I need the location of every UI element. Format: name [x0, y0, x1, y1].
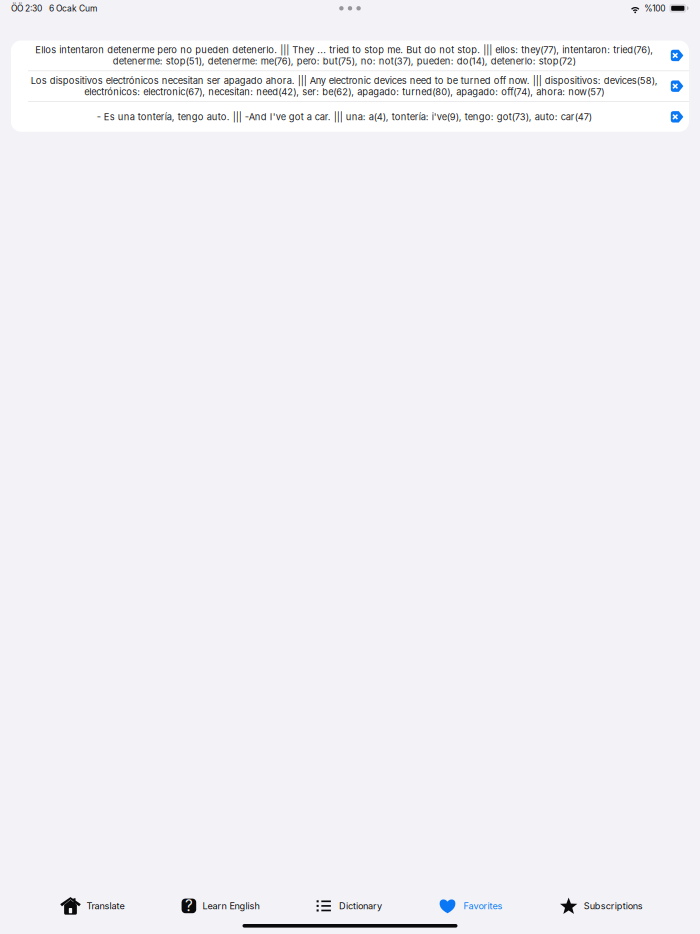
button[interactable]: Los dispositivos electrónicos necesitan …	[11, 71, 689, 101]
button[interactable]: ?	[182, 899, 259, 913]
staticText: Learn English	[202, 900, 259, 911]
button[interactable]: Translate	[60, 897, 124, 915]
staticText: Translate	[86, 900, 124, 911]
button[interactable]: Multitasking controls	[333, 0, 367, 16]
staticText: Los dispositivos electrónicos necesitan …	[30, 75, 657, 97]
staticText: ÖÖ 2:30	[11, 3, 42, 13]
staticText: Ellos intentaron detenerme pero no puede…	[35, 44, 653, 67]
staticText: Subscriptions	[584, 900, 643, 911]
staticText: 6 Ocak Cum	[49, 3, 97, 13]
button[interactable]: Dictionary	[317, 899, 382, 913]
staticText: Dictionary	[339, 900, 382, 911]
button[interactable]: Favorites	[439, 898, 502, 914]
button[interactable]: - Es una tontería, tengo auto. ||| -And …	[11, 102, 689, 132]
staticText: %100	[644, 3, 665, 13]
staticText: Favorites	[463, 900, 502, 911]
button[interactable]: Subscriptions	[560, 897, 643, 915]
button[interactable]: Ellos intentaron detenerme pero no puede…	[11, 40, 689, 70]
staticText: - Es una tontería, tengo auto. ||| -And …	[96, 111, 591, 122]
staticText: ?	[185, 896, 193, 915]
